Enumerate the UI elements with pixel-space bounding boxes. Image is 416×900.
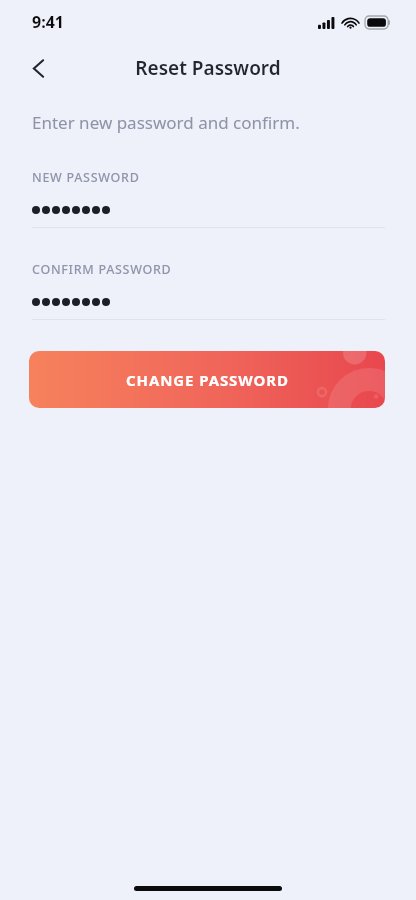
staticText: CONFIRM PASSWORD [32, 261, 172, 278]
staticText: Reset Password [0, 55, 416, 81]
staticText: 9:41 [32, 11, 64, 33]
button[interactable]: Back [20, 50, 56, 86]
staticText: Enter new password and confirm. [32, 111, 300, 134]
button[interactable]: CHANGE PASSWORD [29, 351, 385, 408]
staticText: NEW PASSWORD [32, 169, 140, 186]
staticText: CHANGE PASSWORD [126, 370, 289, 390]
